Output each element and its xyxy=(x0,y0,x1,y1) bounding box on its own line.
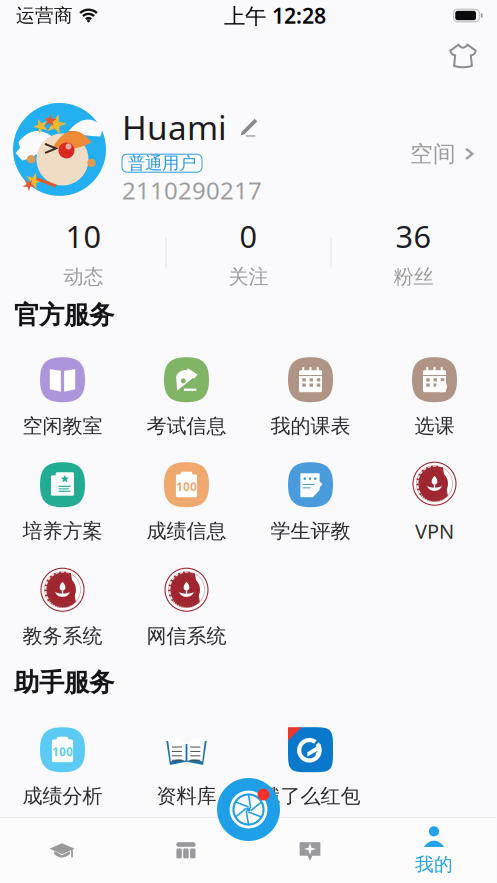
button[interactable]: 资料库 xyxy=(124,710,248,815)
button[interactable]: 饿了么红包 xyxy=(248,710,372,815)
staticText: 100 xyxy=(52,744,73,760)
button[interactable]: 校园 xyxy=(0,820,124,880)
staticText: 我的课表 xyxy=(270,414,350,438)
button[interactable]: 编辑昵称 xyxy=(237,115,261,139)
staticText: 资料库 xyxy=(156,784,216,808)
staticText: 粉丝 xyxy=(393,265,433,289)
staticText: 动态 xyxy=(63,265,103,289)
button[interactable]: 10 xyxy=(1,219,165,285)
staticText: Huami xyxy=(122,105,227,149)
button[interactable]: 考试信息 xyxy=(124,340,248,445)
staticText: 成绩分析 xyxy=(22,784,102,808)
staticText: 空间 xyxy=(410,140,456,168)
button[interactable]: 空闲教室 xyxy=(0,340,124,445)
staticText: 培养方案 xyxy=(22,519,102,543)
staticText: 考试信息 xyxy=(146,414,226,438)
staticText: 选课 xyxy=(414,414,454,438)
staticText: 教务系统 xyxy=(22,624,102,648)
staticText: 0 xyxy=(239,216,257,257)
staticText: 上午 12:28 xyxy=(224,1,326,30)
staticText: 空闲教室 xyxy=(22,414,102,438)
staticText: 100 xyxy=(176,479,197,495)
button[interactable]: 扫一扫 xyxy=(217,778,280,841)
staticText: 普通用户 xyxy=(128,153,196,174)
staticText: VPN xyxy=(415,518,454,544)
staticText: 我的 xyxy=(415,853,453,876)
button[interactable]: 我的课表 xyxy=(248,340,372,445)
staticText: 官方服务 xyxy=(14,299,114,330)
staticText: 学生评教 xyxy=(270,519,350,543)
button[interactable]: VPN xyxy=(372,445,496,550)
button[interactable]: 课表 xyxy=(124,820,248,880)
button[interactable]: 教务系统 xyxy=(0,550,124,655)
staticText: 饿了么红包 xyxy=(260,784,360,808)
staticText: 36 xyxy=(395,216,431,257)
staticText: 运营商 xyxy=(16,4,73,27)
button[interactable]: 100 xyxy=(0,710,124,815)
staticText: 助手服务 xyxy=(14,667,114,698)
button[interactable]: 0 xyxy=(166,219,330,285)
button[interactable]: 空间 xyxy=(404,130,481,178)
button[interactable]: 36 xyxy=(331,219,495,285)
button[interactable]: 100 xyxy=(124,445,248,550)
staticText: 关注 xyxy=(228,265,268,289)
button[interactable]: 学生评教 xyxy=(248,445,372,550)
staticText: 10 xyxy=(65,216,101,257)
button[interactable]: 发现 xyxy=(248,820,372,880)
button[interactable]: 网信系统 xyxy=(124,550,248,655)
staticText: 成绩信息 xyxy=(146,519,226,543)
button[interactable]: 装扮 xyxy=(443,36,483,74)
staticText: 2110290217 xyxy=(122,174,262,206)
button[interactable]: 我的 xyxy=(372,820,496,880)
button[interactable]: 培养方案 xyxy=(0,445,124,550)
button[interactable]: 选课 xyxy=(372,340,496,445)
staticText: 网信系统 xyxy=(146,624,226,648)
